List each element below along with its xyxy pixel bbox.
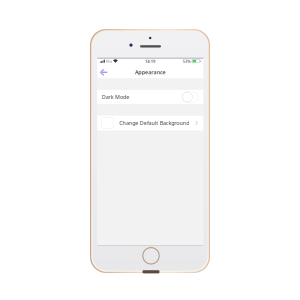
- button[interactable]: Dark Mode: [97, 170, 300, 220]
- staticText: Vlo: [127, 59, 149, 78]
- button[interactable]: Change Default Background: [97, 261, 300, 300]
- staticText: Dark Mode: [113, 183, 210, 208]
- button[interactable]: Back: [97, 85, 141, 131]
